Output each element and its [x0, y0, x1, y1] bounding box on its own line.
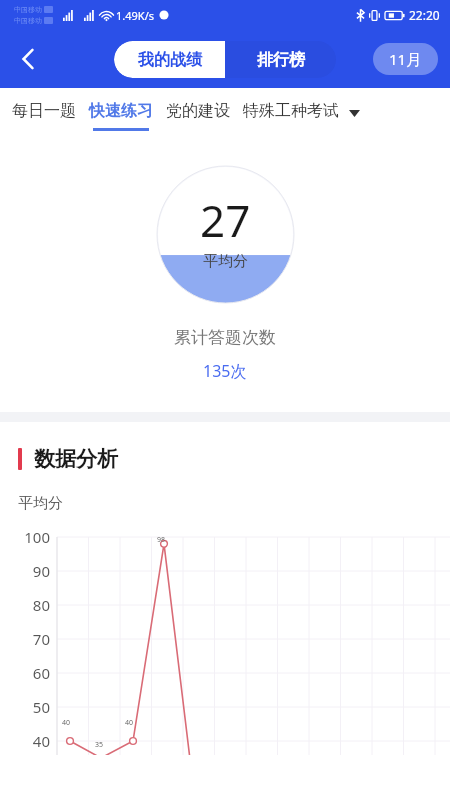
staticText: 70: [32, 629, 50, 649]
staticText: 中国移动: [14, 16, 42, 25]
staticText: 快速练习: [89, 101, 153, 121]
staticText: 40: [62, 718, 71, 728]
button[interactable]: 135次: [203, 360, 247, 382]
staticText: 135次: [203, 360, 247, 382]
staticText: 40: [125, 718, 134, 728]
staticText: 40: [32, 731, 50, 751]
staticText: 22:20: [409, 7, 440, 23]
button[interactable]: 我的战绩: [114, 41, 225, 78]
button[interactable]: More tabs: [344, 103, 364, 123]
staticText: 50: [32, 697, 50, 717]
button[interactable]: Back: [6, 37, 50, 81]
staticText: 平均分: [203, 252, 248, 271]
staticText: 平均分: [18, 494, 63, 513]
staticText: 27: [200, 190, 251, 250]
staticText: 特殊工种考试: [243, 101, 339, 121]
staticText: 数据分析: [34, 446, 118, 472]
staticText: 90: [32, 561, 50, 581]
staticText: 我的战绩: [138, 50, 202, 70]
staticText: 80: [32, 595, 50, 615]
button[interactable]: 11月: [373, 43, 438, 75]
staticText: 60: [32, 663, 50, 683]
staticText: 100: [24, 527, 50, 547]
staticText: 中国移动: [14, 5, 42, 14]
button[interactable]: 特殊工种考试: [243, 88, 339, 138]
staticText: 11月: [389, 49, 422, 69]
button[interactable]: 快速练习: [89, 88, 153, 138]
staticText: 98: [157, 535, 166, 545]
button[interactable]: 党的建设: [166, 88, 230, 138]
staticText: 党的建设: [166, 101, 230, 121]
button[interactable]: 每日一题: [12, 88, 76, 138]
staticText: 累计答题次数: [174, 327, 276, 348]
staticText: 1.49K/s: [116, 8, 154, 23]
button[interactable]: 排行榜: [225, 41, 336, 78]
staticText: 排行榜: [257, 50, 305, 70]
staticText: 每日一题: [12, 101, 76, 121]
staticText: 35: [95, 740, 104, 750]
